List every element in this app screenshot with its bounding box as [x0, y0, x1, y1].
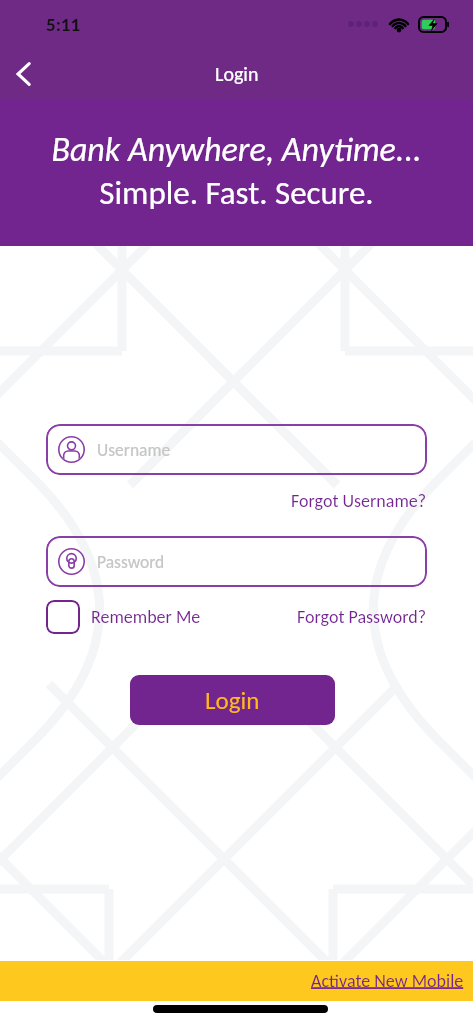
staticText: Activate New Mobile	[311, 970, 464, 992]
button[interactable]: Remember Me	[46, 600, 201, 634]
button[interactable]: Forgot Password?	[297, 606, 427, 628]
staticText: Password	[97, 551, 165, 572]
button[interactable]: Password	[46, 536, 427, 587]
staticText: Simple. Fast. Secure.	[99, 173, 374, 213]
button[interactable]: Activate New Mobile	[0, 961, 473, 1001]
staticText: 5:11	[46, 13, 81, 36]
button[interactable]: Forgot Username?	[291, 490, 473, 512]
staticText: Remember Me	[91, 606, 201, 628]
staticText: Forgot Password?	[297, 606, 427, 628]
button[interactable]: Back	[2, 52, 46, 96]
staticText: Login	[215, 62, 259, 86]
staticText: Username	[97, 439, 171, 460]
staticText: Bank Anywhere, Anytime...	[51, 129, 422, 171]
staticText: Login	[205, 685, 260, 716]
button[interactable]: Login	[130, 675, 335, 725]
button[interactable]: Username	[46, 424, 427, 475]
staticText: Forgot Username?	[291, 490, 427, 512]
